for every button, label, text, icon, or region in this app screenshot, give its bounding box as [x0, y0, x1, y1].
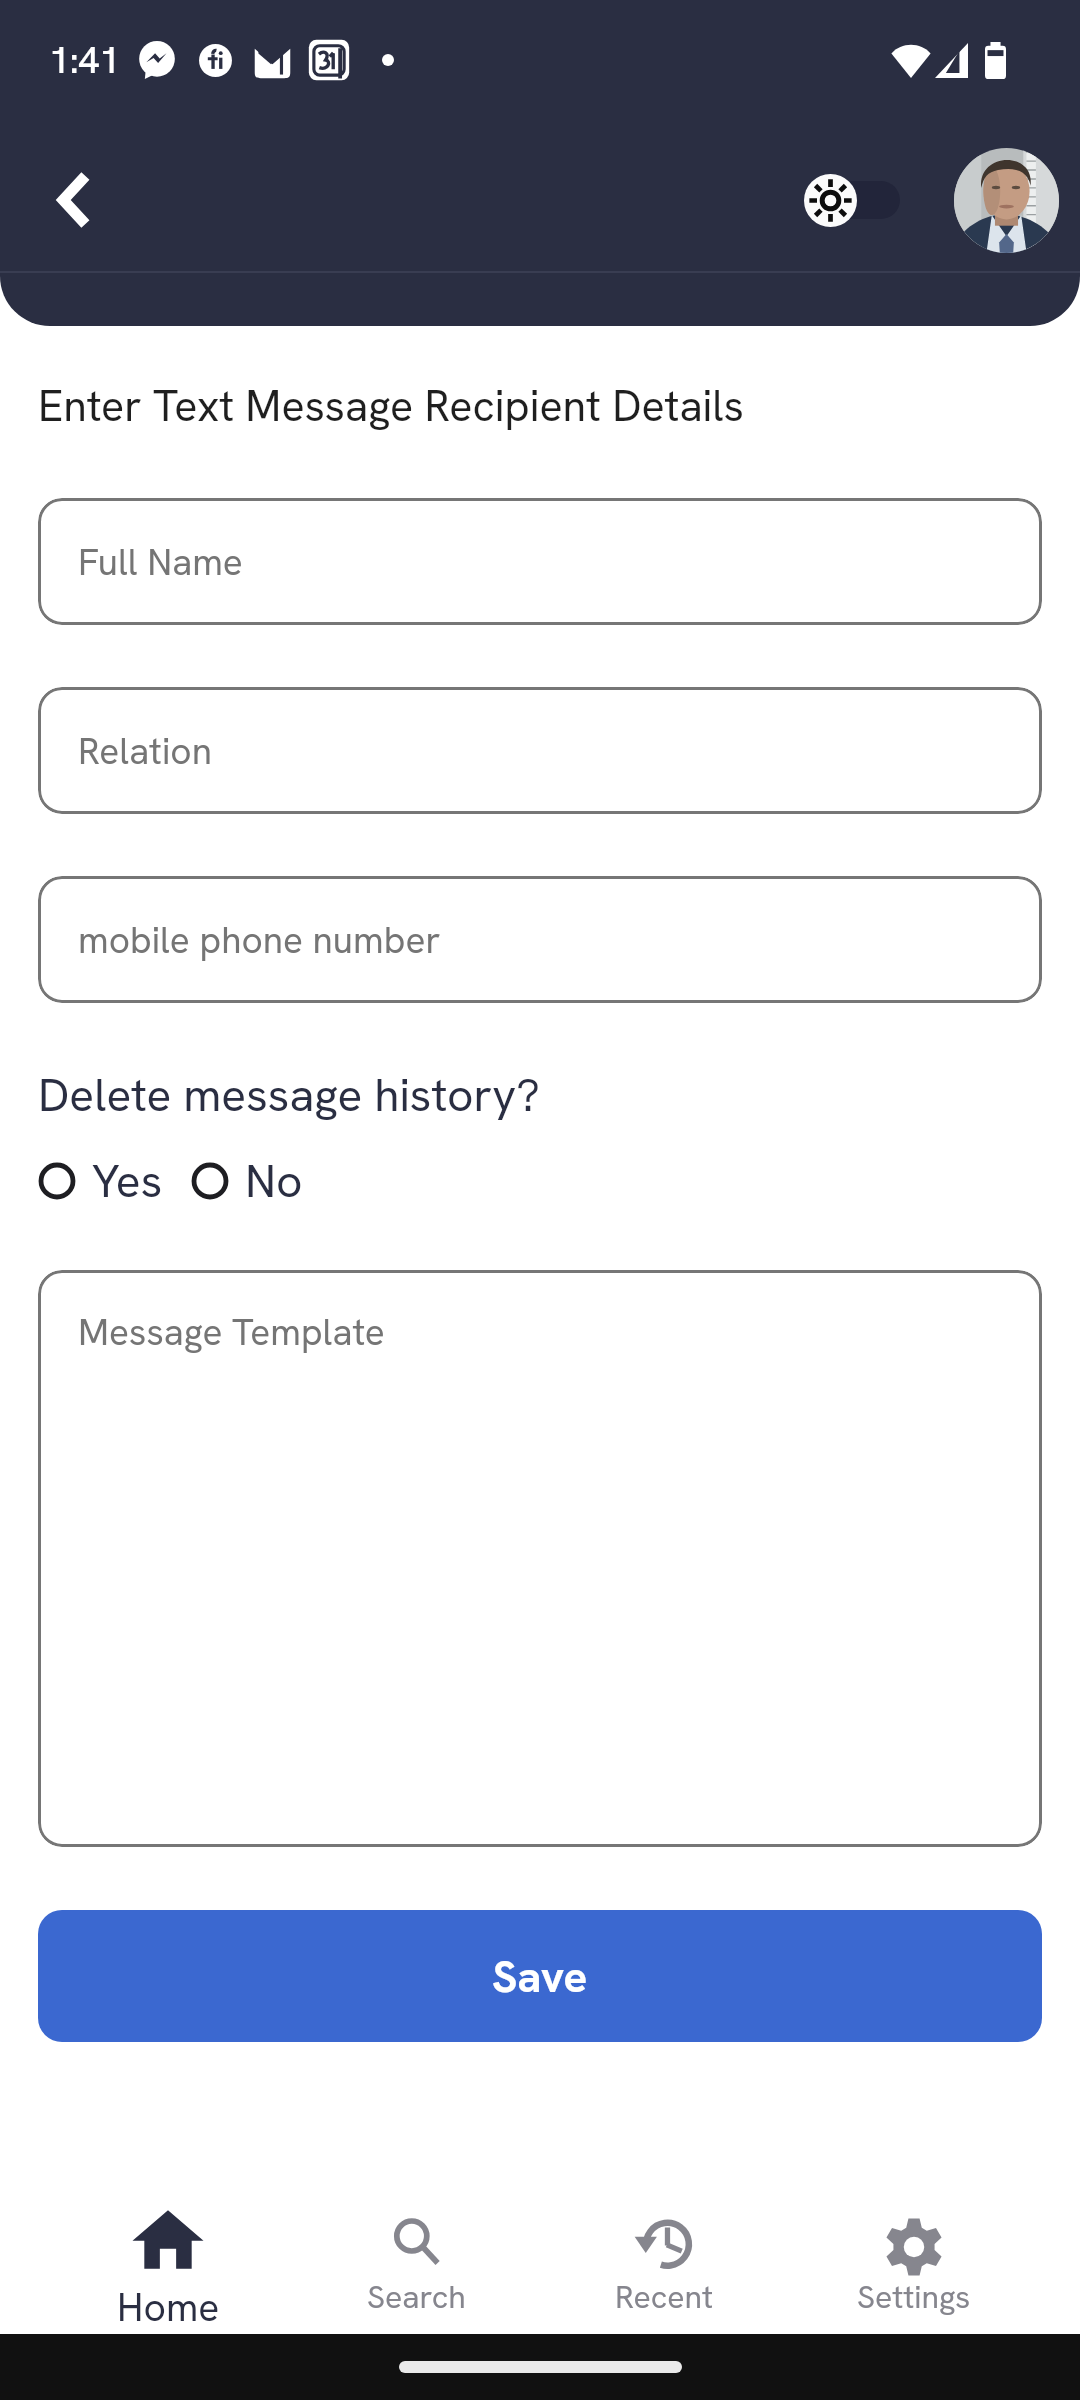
staticText: Search — [367, 2276, 466, 2318]
staticText: Recent — [615, 2276, 714, 2318]
button[interactable]: Full Name — [38, 498, 1042, 625]
button[interactable]: Search — [292, 2150, 540, 2334]
staticText: Yes — [92, 1151, 163, 1211]
button[interactable]: Yes — [38, 1151, 163, 1211]
staticText: Settings — [857, 2276, 971, 2318]
staticText: Full Name — [78, 538, 243, 586]
staticText: Home — [117, 2282, 220, 2333]
button[interactable]: Toggle dark mode — [804, 173, 900, 227]
button[interactable]: mobile phone number — [38, 876, 1042, 1003]
button[interactable]: Back — [32, 158, 116, 242]
staticText: Relation — [78, 727, 212, 775]
button[interactable]: Profile photo — [954, 148, 1059, 253]
staticText: Message Template — [78, 1308, 385, 1356]
button[interactable]: Relation — [38, 687, 1042, 814]
button[interactable]: Settings — [789, 2150, 1038, 2334]
staticText: No — [245, 1151, 303, 1211]
staticText: mobile phone number — [78, 916, 441, 964]
staticText: 1:41 — [49, 36, 121, 84]
button[interactable]: Recent — [540, 2150, 789, 2334]
staticText: Save — [492, 1948, 588, 2005]
staticText: Delete message history? — [38, 1065, 540, 1125]
button[interactable]: Save — [38, 1910, 1042, 2042]
staticText: Enter Text Message Recipient Details — [38, 378, 744, 434]
button[interactable]: Home — [44, 2150, 292, 2334]
button[interactable]: No — [191, 1151, 303, 1211]
button[interactable]: Message Template — [38, 1270, 1042, 1847]
